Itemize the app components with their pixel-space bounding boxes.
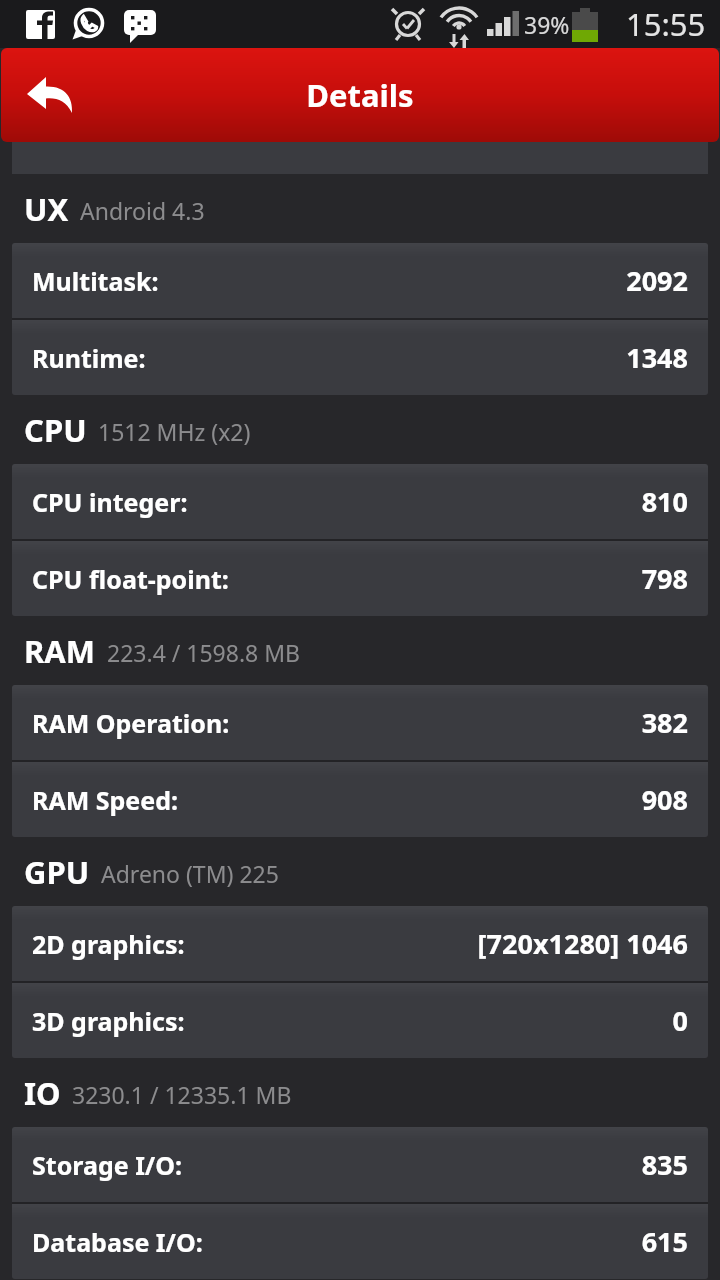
button[interactable]: 3D graphics: (12, 983, 708, 1058)
button[interactable]: RAM Speed: (12, 762, 708, 837)
button[interactable]: Runtime: (12, 320, 708, 395)
staticText: Details (306, 74, 414, 116)
staticText: 615 (641, 1223, 688, 1260)
staticText: Multitask: (32, 264, 159, 298)
button[interactable]: Multitask: (12, 243, 708, 318)
staticText: Android 4.3 (80, 195, 205, 226)
staticText: 15:55 (626, 3, 706, 45)
staticText: 1512 MHz (x2) (98, 416, 251, 447)
staticText: RAM Speed: (32, 783, 179, 817)
staticText: 2092 (626, 262, 688, 299)
staticText: 3230.1 / 12335.1 MB (72, 1079, 292, 1110)
staticText: 810 (641, 483, 688, 520)
staticText: UX (24, 188, 69, 230)
staticText: 908 (641, 781, 688, 818)
button[interactable]: CPU integer: (12, 464, 708, 539)
staticText: Adreno (TM) 225 (101, 858, 279, 889)
staticText: 3D graphics: (32, 1004, 185, 1038)
staticText: 0 (672, 1002, 688, 1039)
staticText: 835 (641, 1146, 688, 1183)
staticText: GPU (24, 851, 90, 893)
staticText: IO (24, 1072, 61, 1114)
staticText: RAM (24, 630, 96, 672)
button[interactable]: 2D graphics: (12, 906, 708, 981)
staticText: RAM Operation: (32, 706, 230, 740)
staticText: Storage I/O: (32, 1148, 183, 1182)
staticText: 1348 (626, 339, 688, 376)
staticText: Database I/O: (32, 1225, 203, 1259)
staticText: CPU integer: (32, 485, 188, 519)
staticText: [720x1280] 1046 (477, 925, 688, 962)
button[interactable]: Storage I/O: (12, 1127, 708, 1202)
button[interactable]: CPU float-point: (12, 541, 708, 616)
button[interactable]: Back (15, 59, 87, 131)
staticText: 39% (524, 9, 570, 40)
button[interactable]: Database I/O: (12, 1204, 708, 1279)
staticText: CPU (24, 409, 87, 451)
button[interactable]: RAM Operation: (12, 685, 708, 760)
staticText: 223.4 / 1598.8 MB (107, 637, 301, 668)
staticText: 798 (641, 560, 688, 597)
staticText: 382 (641, 704, 688, 741)
staticText: CPU float-point: (32, 562, 229, 596)
staticText: Runtime: (32, 341, 146, 375)
staticText: 2D graphics: (32, 927, 185, 961)
